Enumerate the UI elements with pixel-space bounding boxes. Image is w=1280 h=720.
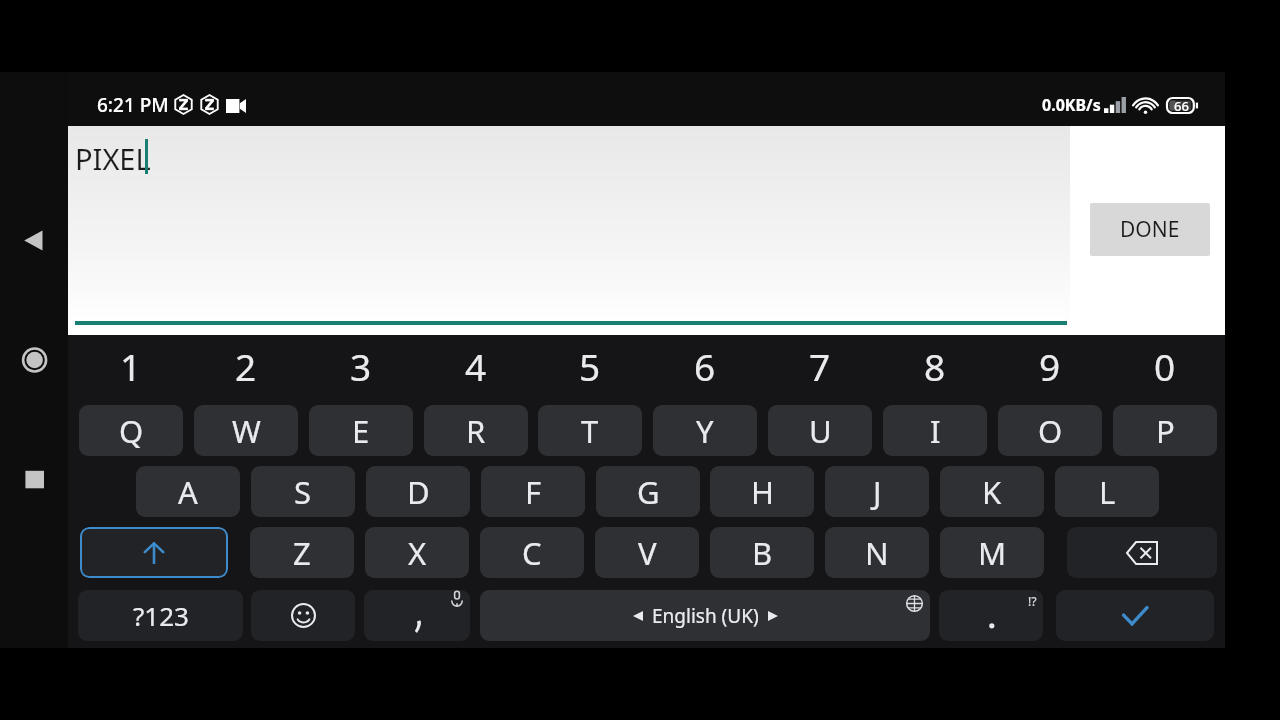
staticText: Y — [696, 410, 714, 452]
button[interactable]: 3 — [309, 341, 413, 383]
button[interactable]: H — [710, 466, 814, 517]
staticText: X — [408, 532, 427, 574]
staticText: K — [982, 471, 1002, 513]
button[interactable]: N — [825, 527, 929, 578]
staticText: C — [522, 532, 542, 574]
button[interactable]: English (UK) — [480, 590, 930, 641]
button[interactable]: K — [940, 466, 1044, 517]
staticText: Z — [293, 532, 311, 574]
button[interactable]: W — [194, 405, 298, 456]
button[interactable]: 6 — [653, 341, 757, 383]
button[interactable]: Q — [79, 405, 183, 456]
button[interactable]: E — [309, 405, 413, 456]
staticText: PIXEL — [75, 139, 151, 178]
staticText: O — [1038, 410, 1063, 452]
staticText: 3 — [350, 341, 372, 383]
staticText: English (UK) — [652, 603, 759, 629]
button[interactable]: 9 — [998, 341, 1102, 383]
staticText: 0.0KB/s — [1042, 94, 1101, 116]
staticText: V — [638, 532, 657, 574]
button[interactable]: 7 — [768, 341, 872, 383]
staticText: 5 — [579, 341, 601, 383]
staticText: 8 — [924, 341, 946, 383]
staticText: I — [930, 410, 941, 452]
staticText: U — [809, 410, 832, 452]
button[interactable]: G — [596, 466, 700, 517]
button[interactable]: Emoji — [251, 590, 355, 641]
button[interactable]: X — [365, 527, 469, 578]
button[interactable]: I — [883, 405, 987, 456]
staticText: 4 — [465, 341, 487, 383]
button[interactable]: Period — [939, 590, 1043, 641]
staticText: N — [865, 532, 889, 574]
staticText: ?123 — [133, 598, 189, 633]
button[interactable]: 2 — [194, 341, 298, 383]
staticText: H — [751, 471, 774, 513]
staticText: 66 — [1174, 97, 1189, 114]
button[interactable]: Recents — [14, 460, 56, 502]
button[interactable]: Z — [250, 527, 354, 578]
button[interactable]: Y — [653, 405, 757, 456]
staticText: J — [873, 471, 882, 513]
staticText: E — [352, 410, 370, 452]
button[interactable]: Backspace — [1067, 527, 1217, 578]
staticText: L — [1099, 471, 1116, 513]
staticText: 6 — [694, 341, 716, 383]
button[interactable]: Shift — [80, 527, 228, 578]
button[interactable]: P — [1113, 405, 1217, 456]
staticText: W — [232, 410, 261, 452]
button[interactable]: Comma — [364, 590, 470, 641]
button[interactable]: B — [710, 527, 814, 578]
staticText: P — [1156, 410, 1175, 452]
button[interactable]: S — [251, 466, 355, 517]
staticText: G — [637, 471, 660, 513]
staticText: DONE — [1120, 215, 1180, 244]
button[interactable]: 8 — [883, 341, 987, 383]
button[interactable]: F — [481, 466, 585, 517]
staticText: !? — [1028, 593, 1037, 609]
button[interactable]: Enter — [1056, 590, 1214, 641]
button[interactable]: V — [595, 527, 699, 578]
staticText: 9 — [1039, 341, 1061, 383]
button[interactable]: M — [940, 527, 1044, 578]
staticText: S — [294, 471, 312, 513]
button[interactable]: D — [366, 466, 470, 517]
button[interactable]: 4 — [424, 341, 528, 383]
button[interactable]: R — [424, 405, 528, 456]
staticText: 6:21 PM — [97, 92, 169, 118]
button[interactable]: 1 — [79, 341, 183, 383]
staticText: R — [466, 410, 486, 452]
button[interactable]: J — [825, 466, 929, 517]
staticText: 7 — [809, 341, 831, 383]
staticText: 1 — [120, 341, 142, 383]
button[interactable]: ?123 — [78, 590, 243, 641]
staticText: B — [752, 532, 773, 574]
staticText: D — [407, 471, 430, 513]
button[interactable]: C — [480, 527, 584, 578]
button[interactable]: Back — [14, 220, 54, 260]
staticText: Q — [119, 410, 144, 452]
button[interactable]: DONE — [1090, 203, 1210, 256]
staticText: F — [525, 471, 542, 513]
button[interactable]: A — [136, 466, 240, 517]
staticText: T — [581, 410, 599, 452]
button[interactable]: 0 — [1113, 341, 1217, 383]
button[interactable]: O — [998, 405, 1102, 456]
staticText: 2 — [235, 341, 257, 383]
button[interactable]: Home — [14, 340, 56, 382]
button[interactable]: T — [538, 405, 642, 456]
button[interactable]: PIXEL — [68, 126, 1070, 335]
staticText: A — [178, 471, 198, 513]
button[interactable]: U — [768, 405, 872, 456]
staticText: M — [978, 532, 1007, 574]
button[interactable]: L — [1055, 466, 1159, 517]
staticText: 0 — [1154, 341, 1176, 383]
button[interactable]: 5 — [538, 341, 642, 383]
